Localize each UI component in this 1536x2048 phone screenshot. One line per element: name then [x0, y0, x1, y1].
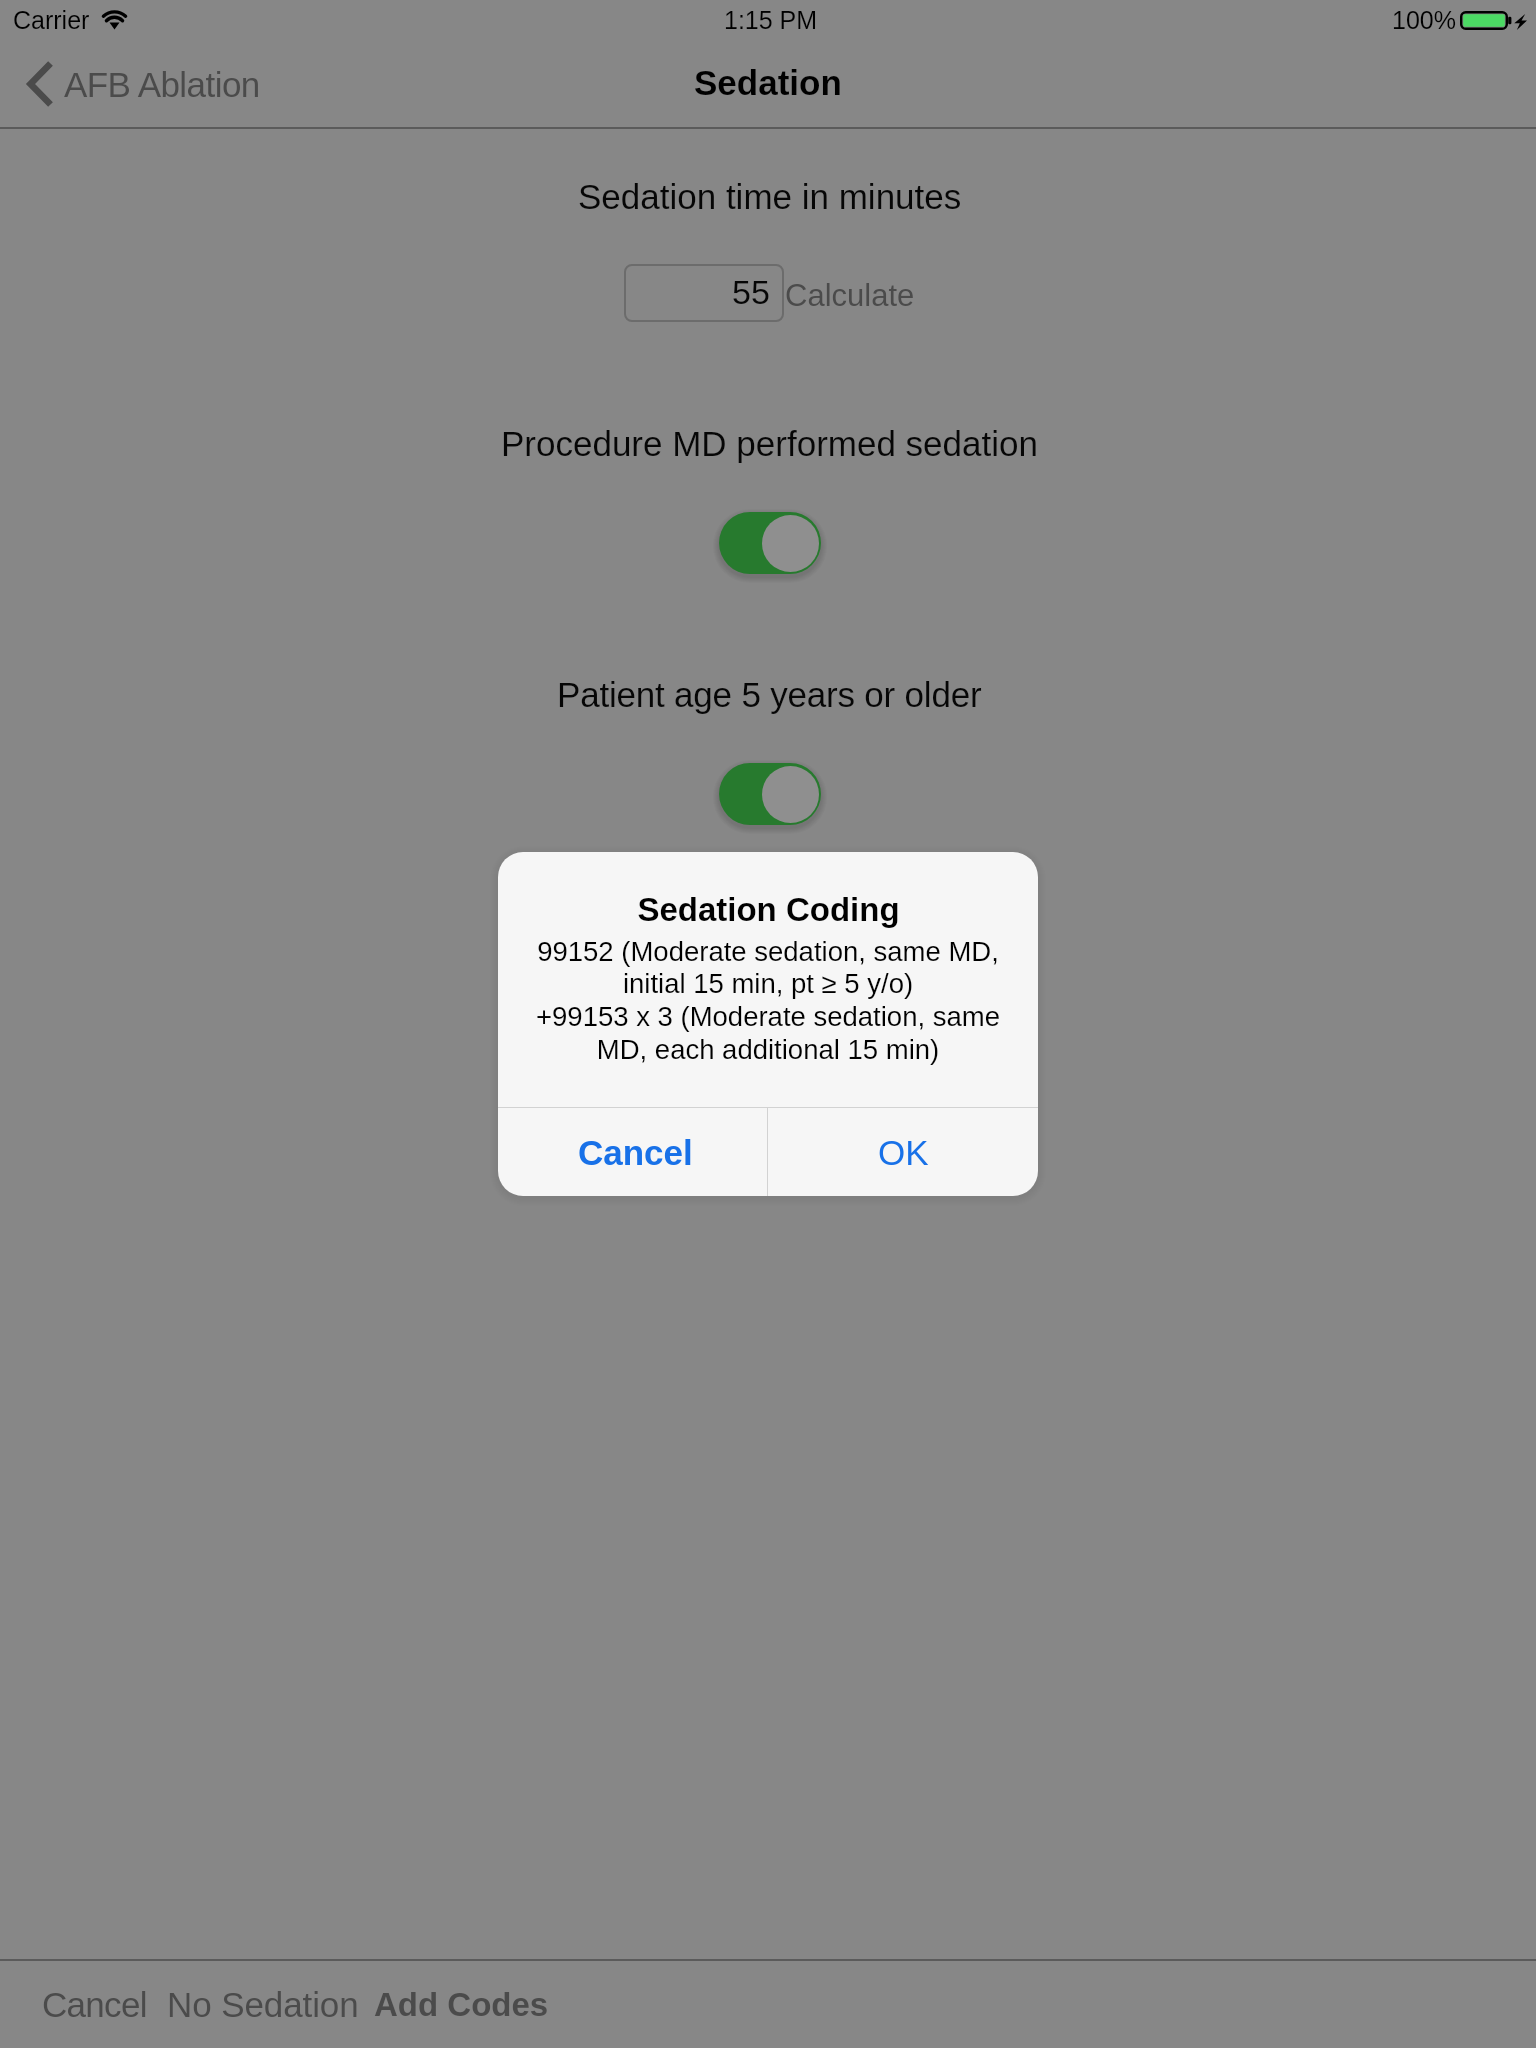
staticText: No Sedation	[167, 1985, 359, 2024]
button[interactable]: Add Codes	[365, 1972, 558, 2037]
button[interactable]: Toggle, on	[719, 763, 821, 825]
button[interactable]: Back to AFB Ablation	[20, 56, 270, 112]
staticText: Sedation	[694, 63, 842, 102]
staticText: OK	[878, 1133, 929, 1172]
button[interactable]: OK	[768, 1108, 1038, 1196]
staticText: Patient age 5 years or older	[557, 675, 982, 714]
button[interactable]: No Sedation	[161, 1971, 365, 2038]
staticText: 100%	[1392, 6, 1456, 34]
staticText: Sedation time in minutes	[578, 177, 962, 216]
staticText: AFB Ablation	[64, 65, 260, 104]
staticText: Cancel	[42, 1985, 147, 2024]
staticText: Procedure MD performed sedation	[501, 424, 1038, 463]
staticText: Sedation Coding	[637, 891, 900, 928]
staticText: Add Codes	[374, 1986, 549, 2023]
button[interactable]: Toggle, on	[719, 512, 821, 574]
button[interactable]: Cancel	[498, 1108, 767, 1196]
staticText: 55	[732, 273, 770, 311]
staticText: Carrier	[13, 6, 90, 34]
staticText: Cancel	[578, 1133, 693, 1172]
staticText: 1:15 PM	[724, 6, 818, 34]
staticText: 99152 (Moderate sedation, same MD, initi…	[512, 936, 1024, 1065]
button[interactable]: Cancel	[28, 1971, 161, 2038]
staticText: Calculate	[785, 278, 915, 313]
button[interactable]: Sedation time in minutes, 55	[624, 264, 784, 322]
button[interactable]: Calculate	[773, 268, 927, 323]
